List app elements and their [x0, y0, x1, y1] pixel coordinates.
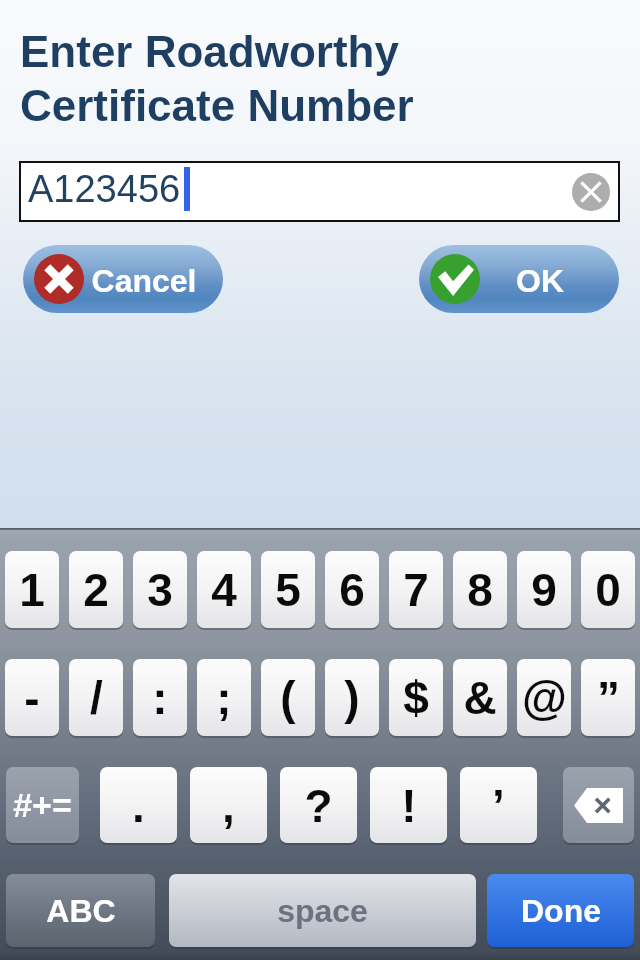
button[interactable]: ABC — [6, 874, 155, 947]
button[interactable]: Backspace — [563, 767, 634, 843]
button[interactable]: ” — [581, 659, 635, 736]
button[interactable]: ( — [261, 659, 315, 736]
button[interactable]: 2 — [69, 551, 123, 628]
staticText: $ — [403, 672, 429, 723]
button[interactable]: 5 — [261, 551, 315, 628]
staticText: OK — [470, 263, 610, 299]
button[interactable]: 4 — [197, 551, 251, 628]
button[interactable]: #+= — [6, 767, 79, 843]
staticText: . — [132, 780, 145, 831]
staticText: ) — [344, 672, 360, 723]
staticText: 1 — [19, 564, 45, 615]
button[interactable]: 7 — [389, 551, 443, 628]
button[interactable]: OK — [419, 245, 619, 313]
staticText: 9 — [531, 564, 557, 615]
button[interactable]: @ — [517, 659, 571, 736]
button[interactable]: ; — [197, 659, 251, 736]
button[interactable]: 9 — [517, 551, 571, 628]
staticText: ” — [597, 672, 620, 723]
button[interactable]: - — [5, 659, 59, 736]
button[interactable]: space — [169, 874, 476, 947]
staticText: #+= — [13, 786, 72, 824]
staticText: & — [463, 672, 497, 723]
button[interactable]: A123456 — [19, 161, 620, 222]
button[interactable]: Done — [487, 874, 634, 947]
button[interactable]: 6 — [325, 551, 379, 628]
staticText: 8 — [467, 564, 493, 615]
staticText: 2 — [83, 564, 109, 615]
button[interactable]: 0 — [581, 551, 635, 628]
button[interactable]: & — [453, 659, 507, 736]
staticText: , — [222, 780, 235, 831]
staticText: 0 — [595, 564, 621, 615]
staticText: - — [24, 672, 40, 723]
staticText: 7 — [403, 564, 429, 615]
staticText: / — [90, 672, 103, 723]
staticText: Enter Roadworthy Certificate Number — [20, 27, 414, 131]
staticText: ( — [280, 672, 296, 723]
staticText: Cancel — [74, 263, 214, 299]
staticText: @ — [522, 672, 567, 723]
staticText: ; — [216, 672, 232, 723]
staticText: 4 — [211, 564, 237, 615]
staticText: space — [277, 893, 368, 929]
button[interactable]: ’ — [460, 767, 537, 843]
button[interactable]: ? — [280, 767, 357, 843]
staticText: 5 — [275, 564, 301, 615]
staticText: ABC — [46, 893, 116, 929]
staticText: Done — [521, 893, 601, 929]
button[interactable]: . — [100, 767, 177, 843]
button[interactable]: 1 — [5, 551, 59, 628]
staticText: A123456 — [28, 168, 181, 210]
button[interactable]: ) — [325, 659, 379, 736]
button[interactable]: Cancel — [23, 245, 223, 313]
button[interactable]: ! — [370, 767, 447, 843]
button[interactable]: : — [133, 659, 187, 736]
button[interactable]: 3 — [133, 551, 187, 628]
button[interactable]: Clear text — [572, 173, 610, 211]
button[interactable]: 8 — [453, 551, 507, 628]
staticText: 6 — [339, 564, 365, 615]
staticText: ! — [401, 780, 417, 831]
button[interactable]: $ — [389, 659, 443, 736]
button[interactable]: / — [69, 659, 123, 736]
staticText: ? — [304, 780, 333, 831]
staticText: ’ — [492, 780, 505, 831]
button[interactable]: , — [190, 767, 267, 843]
staticText: : — [152, 672, 168, 723]
staticText: 3 — [147, 564, 173, 615]
